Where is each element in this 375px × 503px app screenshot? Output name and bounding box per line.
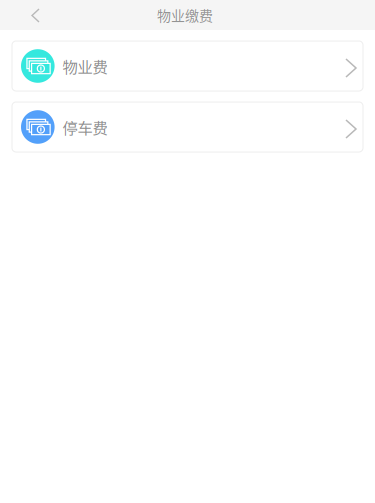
button[interactable]: 停车费 — [12, 102, 363, 152]
button[interactable]: Back — [20, 0, 51, 30]
staticText: 停车费 — [63, 116, 108, 138]
staticText: 物业缴费 — [157, 5, 213, 25]
staticText: 物业费 — [63, 55, 108, 77]
button[interactable]: 物业费 — [12, 41, 363, 91]
